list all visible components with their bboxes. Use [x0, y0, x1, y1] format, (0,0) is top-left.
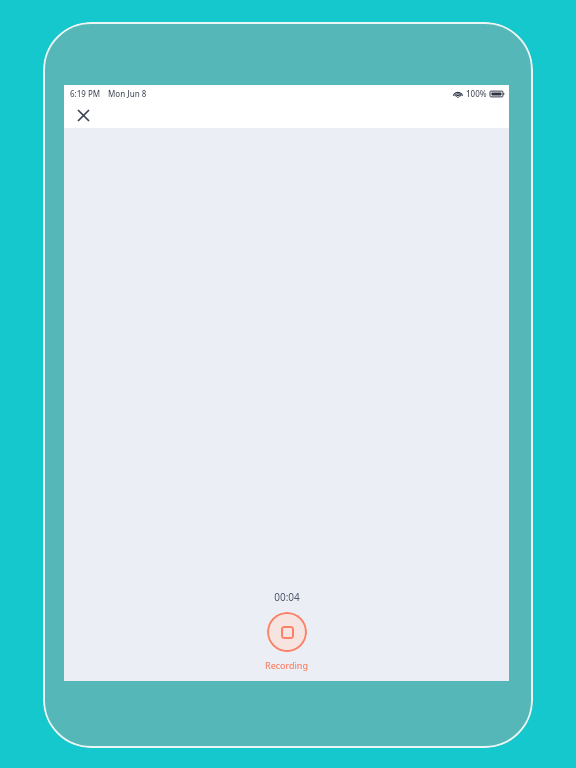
staticText: Recording — [265, 659, 308, 671]
staticText: Mon Jun 8 — [108, 88, 147, 99]
staticText: 100% — [466, 88, 487, 99]
button[interactable]: Close — [71, 103, 95, 127]
staticText: 00:04 — [274, 590, 300, 604]
staticText: 6:19 PM — [70, 88, 101, 99]
button[interactable]: Stop recording — [267, 612, 307, 652]
